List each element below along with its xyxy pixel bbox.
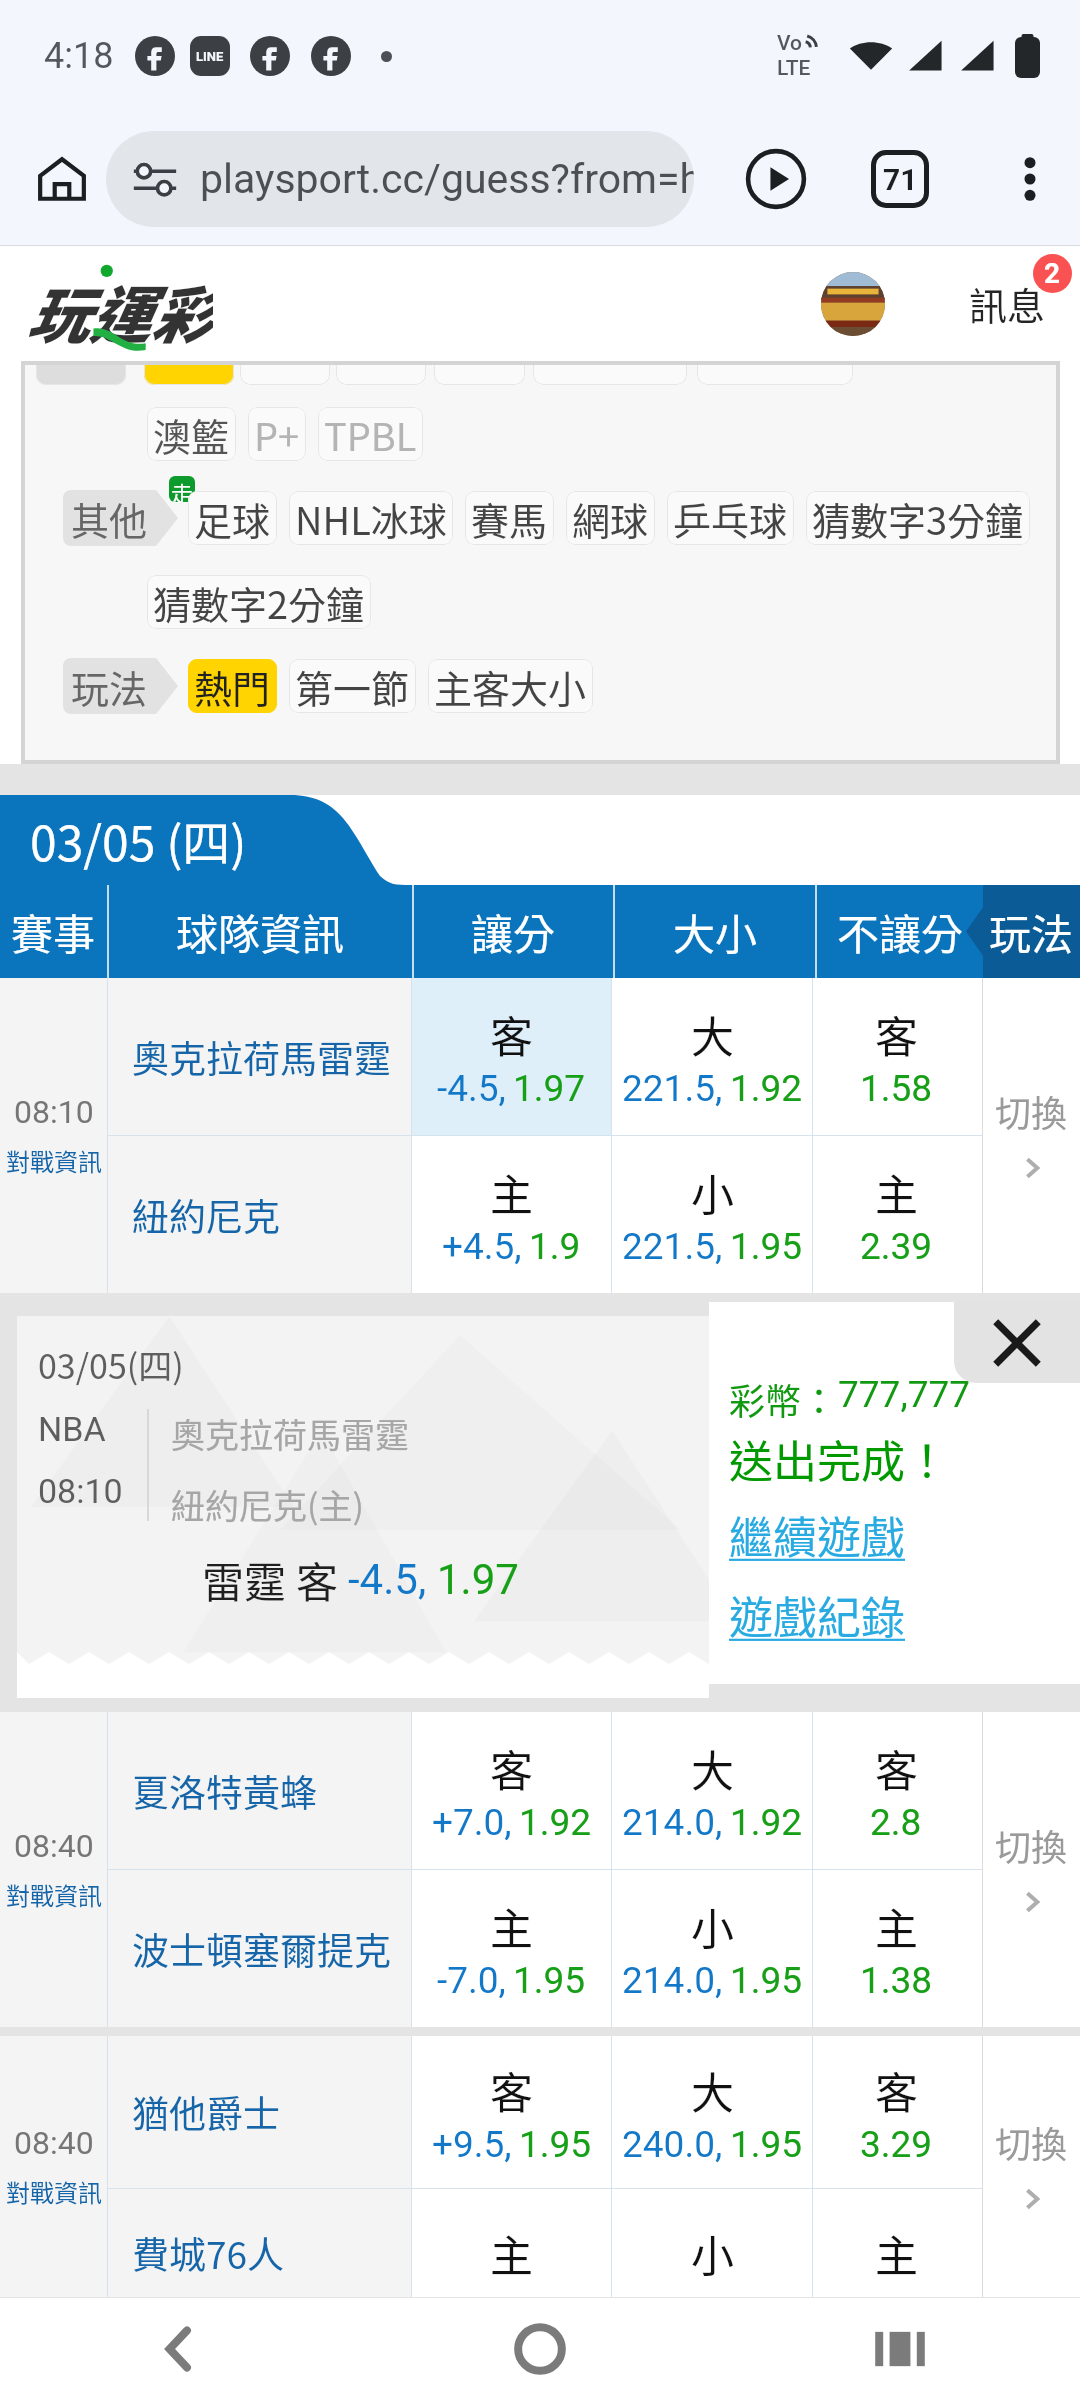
button[interactable]: 主 — [412, 1870, 611, 2027]
staticText: 221.5, — [622, 1225, 723, 1268]
staticText: 08:10 — [14, 1093, 94, 1131]
button[interactable]: 費城76人 — [132, 2199, 411, 2297]
staticText: 1.97 — [513, 1067, 586, 1110]
button[interactable]: 足球 — [188, 491, 277, 545]
staticText: 大小 — [673, 901, 758, 962]
button[interactable]: 網球 — [566, 491, 655, 545]
button[interactable]: 遊戲紀錄 — [729, 1583, 905, 1647]
button[interactable]: 08:10 — [0, 978, 107, 1293]
button[interactable]: Home — [490, 2299, 590, 2399]
staticText: 夏洛特黃蜂 — [132, 1764, 317, 1818]
button[interactable]: 切換 — [983, 2036, 1080, 2297]
button[interactable]: 主 — [412, 1136, 611, 1293]
button[interactable]: 小 — [612, 2199, 812, 2297]
button[interactable]: 賽事 — [0, 885, 107, 978]
button[interactable]: 猶他爵士 — [132, 2036, 411, 2188]
button[interactable]: 08:40 — [0, 2036, 107, 2297]
staticText: NBA — [38, 1409, 106, 1449]
button[interactable]: 08:40 — [0, 1712, 107, 2027]
button[interactable]: 主 — [813, 1870, 979, 2027]
button[interactable]: 夏洛特黃蜂 — [132, 1712, 411, 1869]
staticText: -4.5, — [437, 1067, 506, 1110]
button[interactable]: 玩法 — [982, 885, 1080, 978]
staticText: 猜數字3分鐘 — [812, 491, 1024, 545]
button[interactable]: 澳籃 — [147, 407, 236, 461]
staticText: 2.39 — [860, 1225, 933, 1268]
button[interactable]: playsport.cc/guess?from=h — [106, 131, 694, 227]
button[interactable]: Recent apps — [850, 2299, 950, 2399]
staticText: 1.97 — [437, 1555, 519, 1604]
staticText: 1.95 — [730, 1959, 803, 2002]
staticText: 猶他爵士 — [132, 2085, 280, 2139]
button[interactable]: 大 — [612, 978, 812, 1135]
button[interactable]: 大 — [612, 1712, 812, 1869]
staticText: 03/05(四) — [38, 1340, 184, 1389]
staticText: 波士頓塞爾提克 — [132, 1922, 391, 1976]
button[interactable]: 主 — [813, 1136, 979, 1293]
button[interactable]: 猜數字3分鐘 — [806, 491, 1030, 545]
staticText: 奧克拉荷馬雷霆 — [132, 1030, 391, 1084]
button[interactable]: Home — [22, 139, 102, 219]
staticText: 送出完成！ — [729, 1427, 949, 1491]
button[interactable]: 猜數字2分鐘 — [147, 575, 371, 629]
button[interactable]: 球隊資訊 — [109, 885, 412, 978]
button[interactable]: 波士頓塞爾提克 — [132, 1870, 411, 2027]
staticText: 玩法 — [989, 901, 1074, 962]
staticText: 大 — [691, 2059, 734, 2121]
button[interactable]: Play — [736, 139, 816, 219]
button[interactable]: 繼續遊戲 — [729, 1503, 905, 1567]
button[interactable]: 客 — [813, 2036, 979, 2188]
button[interactable]: 不讓分 — [817, 885, 983, 978]
button[interactable]: 熱門 — [188, 659, 277, 713]
button[interactable]: 讓分 — [414, 885, 613, 978]
staticText: 主 — [875, 2222, 918, 2284]
staticText: 網球 — [572, 491, 649, 545]
button[interactable]: 小 — [612, 1136, 812, 1293]
staticText: 乒乓球 — [673, 491, 788, 545]
button[interactable]: 主 — [412, 2199, 611, 2297]
staticText: 切換 — [995, 2116, 1068, 2168]
button[interactable]: P+ — [248, 407, 306, 461]
staticText: LTE — [777, 56, 811, 81]
staticText: 玩運彩 — [26, 266, 213, 348]
button[interactable]: 主 — [813, 2199, 979, 2297]
button[interactable]: 紐約尼克 — [132, 1136, 411, 1293]
button[interactable]: 客 — [412, 978, 611, 1135]
button[interactable]: 第一節 — [289, 659, 416, 713]
button[interactable]: 小 — [612, 1870, 812, 2027]
staticText: 奧克拉荷馬雷霆 — [171, 1409, 409, 1458]
button[interactable]: 乒乓球 — [667, 491, 794, 545]
staticText: 繼續遊戲 — [729, 1503, 905, 1567]
button[interactable]: 訊息 — [969, 276, 1046, 331]
button[interactable]: 切換 — [983, 978, 1080, 1293]
staticText: 大 — [691, 1003, 734, 1065]
staticText: 1.95 — [513, 1959, 586, 2002]
button[interactable]: 客 — [813, 978, 979, 1135]
staticText: 221.5, — [622, 1067, 723, 1110]
button[interactable]: More options — [994, 143, 1066, 215]
button[interactable]: 客 — [412, 1712, 611, 1869]
button[interactable]: Back — [130, 2299, 230, 2399]
staticText: 777,777 — [838, 1373, 971, 1416]
button[interactable]: 大小 — [615, 885, 815, 978]
staticText: 對戰資訊 — [6, 1877, 102, 1912]
staticText: 球隊資訊 — [176, 901, 345, 962]
button[interactable]: Game — [821, 272, 885, 336]
button[interactable]: 主客大小 — [428, 659, 593, 713]
button[interactable]: 客 — [813, 1712, 979, 1869]
staticText: 71 — [883, 162, 918, 197]
staticText: 主 — [875, 1895, 918, 1957]
button[interactable]: 客 — [412, 2036, 611, 2188]
staticText: 賽事 — [11, 901, 96, 962]
button[interactable]: 大 — [612, 2036, 812, 2188]
button[interactable]: 賽馬 — [465, 491, 554, 545]
button[interactable]: 奧克拉荷馬雷霆 — [132, 978, 411, 1135]
staticText: 240.0, — [622, 2123, 723, 2166]
button[interactable]: NHL冰球 — [289, 491, 453, 545]
button[interactable]: TPBL — [318, 407, 423, 461]
button[interactable]: 切換 — [983, 1712, 1080, 2027]
button[interactable]: Tabs — [860, 139, 940, 219]
staticText: 熱門 — [194, 659, 271, 713]
button[interactable]: Close — [954, 1302, 1080, 1383]
staticText: 3.29 — [860, 2123, 933, 2166]
